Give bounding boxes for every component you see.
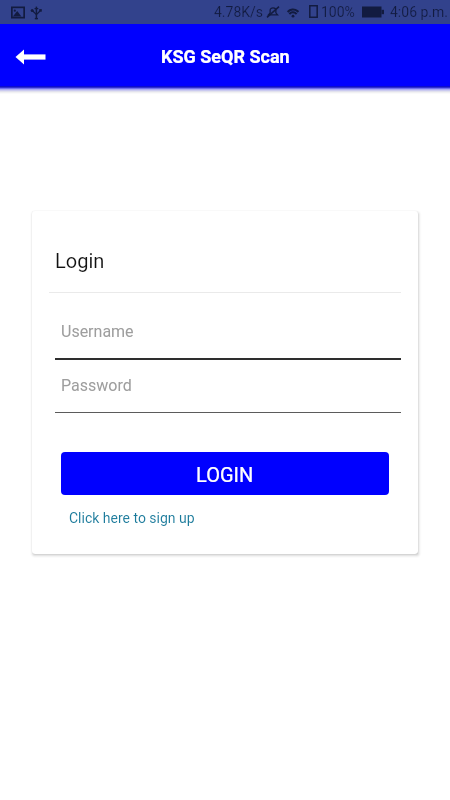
button[interactable]: Click here to sign up (69, 510, 195, 526)
staticText: 4.78K/s (214, 4, 264, 20)
staticText: 100% (321, 4, 355, 20)
staticText: LOGIN (196, 463, 254, 486)
staticText: Login (55, 249, 105, 272)
staticText: Password (61, 376, 132, 395)
staticText: 4:06 p.m. (390, 4, 448, 20)
staticText: KSG SeQR Scan (161, 46, 290, 67)
staticText: Click here to sign up (69, 510, 195, 526)
button[interactable]: LOGIN (61, 452, 389, 495)
button[interactable]: Back (2, 24, 54, 86)
staticText: Username (61, 322, 134, 341)
